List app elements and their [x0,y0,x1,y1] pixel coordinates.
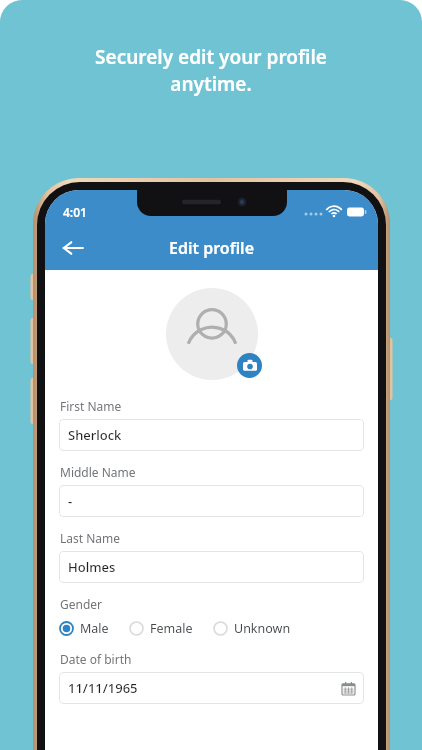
button[interactable]: Change photo [237,353,262,378]
button[interactable]: - [59,485,364,517]
staticText: 11/11/1965 [68,679,138,697]
button[interactable]: Sherlock [59,419,364,451]
button[interactable]: Female [129,618,193,639]
staticText: Securely edit your profile anytime. [42,44,380,97]
staticText: Date of birth [60,651,132,667]
staticText: Edit profile [169,237,254,259]
staticText: 4:01 [63,204,87,220]
staticText: Sherlock [68,426,122,444]
staticText: Unknown [234,620,291,637]
staticText: Male [80,620,109,637]
staticText: Holmes [68,558,116,576]
button[interactable]: 11/11/1965 [59,672,364,704]
button[interactable]: Holmes [59,551,364,583]
button[interactable]: Unknown [213,618,291,639]
staticText: Gender [60,596,103,612]
staticText: Last Name [60,530,121,546]
staticText: Female [150,620,193,637]
staticText: Middle Name [60,464,136,480]
button[interactable]: Back [53,228,93,268]
staticText: - [68,492,73,510]
button[interactable]: Profile photo [166,288,258,380]
button[interactable]: Male [59,618,109,639]
staticText: First Name [60,398,122,414]
